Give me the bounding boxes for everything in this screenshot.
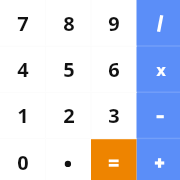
button[interactable]: 0 (0, 139, 46, 180)
button[interactable]: 5 (46, 46, 92, 92)
staticText: 8 (63, 10, 75, 37)
staticText: 3 (108, 102, 120, 129)
button[interactable]: 9 (91, 0, 137, 46)
staticText: 1 (17, 102, 29, 129)
button[interactable]: 7 (0, 0, 46, 46)
button[interactable]: Minus (137, 92, 180, 138)
button[interactable]: 4 (0, 46, 46, 92)
button[interactable]: Plus (137, 139, 180, 180)
staticText: 4 (17, 56, 29, 83)
staticText: 5 (63, 56, 75, 83)
staticText: 6 (108, 56, 120, 83)
staticText: 7 (17, 10, 29, 37)
staticText: x (156, 59, 166, 81)
button[interactable]: Divide (137, 0, 180, 46)
button[interactable]: 1 (0, 92, 46, 138)
staticText: 2 (63, 102, 75, 129)
staticText: 0 (17, 149, 29, 176)
button[interactable]: 3 (91, 92, 137, 138)
button[interactable]: Multiply (137, 46, 180, 92)
button[interactable]: 2 (46, 92, 92, 138)
button[interactable]: Decimal point (46, 139, 92, 180)
button[interactable]: Equals (91, 139, 137, 180)
button[interactable]: 6 (91, 46, 137, 92)
button[interactable]: 8 (46, 0, 92, 46)
staticText: 9 (108, 10, 120, 37)
